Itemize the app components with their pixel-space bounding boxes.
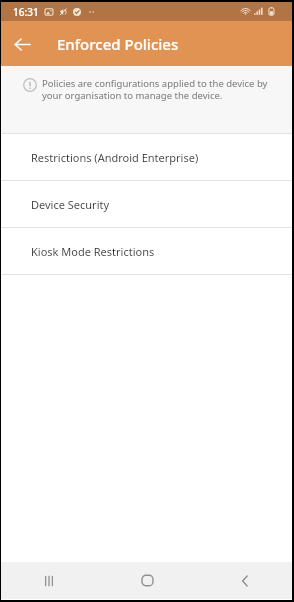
button[interactable]: Restrictions (Android Enterprise) [0,134,294,180]
staticText: Policies are configurations applied to t… [42,77,268,102]
staticText: Restrictions (Android Enterprise) [31,150,199,165]
staticText: Enforced Policies [57,34,179,54]
staticText: Kiosk Mode Restrictions [31,244,155,259]
button[interactable]: Back [0,22,44,66]
button[interactable]: Home [98,562,196,599]
button[interactable]: Recent apps [0,562,98,599]
button[interactable]: Device Security [0,181,294,227]
staticText: Device Security [31,197,110,212]
staticText: 16:31 [13,5,39,19]
button[interactable]: Back [196,562,294,599]
button[interactable]: Kiosk Mode Restrictions [0,228,294,274]
